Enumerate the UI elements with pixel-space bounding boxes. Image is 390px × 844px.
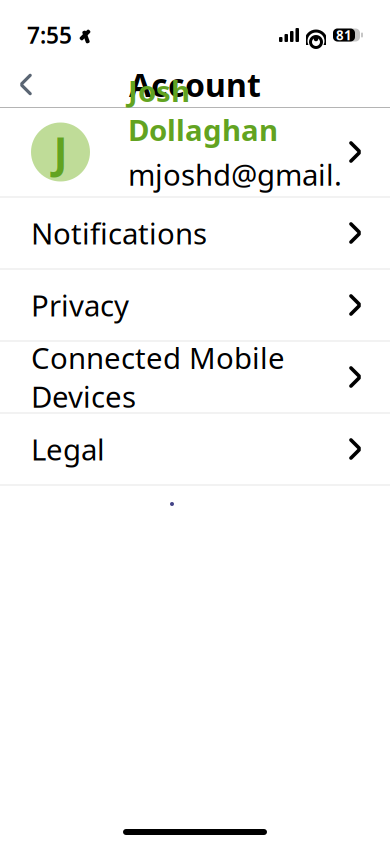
staticText: Legal bbox=[31, 429, 105, 468]
button[interactable]: Back bbox=[4, 62, 48, 106]
staticText: Connected Mobile Devices bbox=[31, 338, 285, 416]
staticText: mjoshd@gmail.com bbox=[128, 155, 342, 233]
button[interactable]: Legal bbox=[0, 414, 390, 484]
staticText: Notifications bbox=[31, 213, 207, 252]
staticText: 7:55 bbox=[27, 20, 72, 50]
staticText: Privacy bbox=[31, 285, 129, 324]
staticText: Josh Dollaghan bbox=[128, 71, 278, 149]
staticText: J bbox=[53, 124, 67, 180]
staticText: 81 bbox=[336, 26, 352, 44]
staticText: Account bbox=[129, 63, 261, 106]
button[interactable]: Notifications bbox=[0, 198, 390, 268]
button[interactable]: J bbox=[0, 108, 390, 196]
button[interactable]: Connected Mobile Devices bbox=[0, 342, 390, 412]
button[interactable]: Privacy bbox=[0, 270, 390, 340]
